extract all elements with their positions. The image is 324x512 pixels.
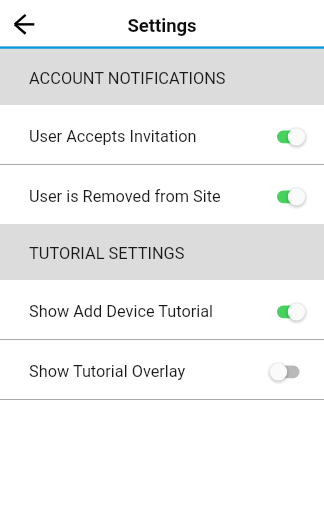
button[interactable]: Show Add Device Tutorial, on <box>270 288 312 332</box>
button[interactable]: User is Removed from Site <box>0 165 324 224</box>
button[interactable]: Navigate up <box>0 0 48 46</box>
staticText: Show Add Device Tutorial <box>29 302 270 321</box>
staticText: Show Tutorial Overlay <box>29 362 270 381</box>
staticText: User Accepts Invitation <box>29 127 270 146</box>
staticText: ACCOUNT NOTIFICATIONS <box>29 69 226 88</box>
button[interactable]: User Accepts Invitation <box>0 105 324 164</box>
staticText: TUTORIAL SETTINGS <box>29 244 185 263</box>
staticText: Settings <box>127 15 197 37</box>
staticText: User is Removed from Site <box>29 187 270 206</box>
button[interactable]: User Accepts Invitation, on <box>270 113 312 157</box>
button[interactable]: Show Tutorial Overlay <box>0 340 324 399</box>
button[interactable]: User is Removed from Site, on <box>270 173 312 217</box>
button[interactable]: Show Tutorial Overlay, off <box>270 348 312 392</box>
button[interactable]: Show Add Device Tutorial <box>0 280 324 339</box>
